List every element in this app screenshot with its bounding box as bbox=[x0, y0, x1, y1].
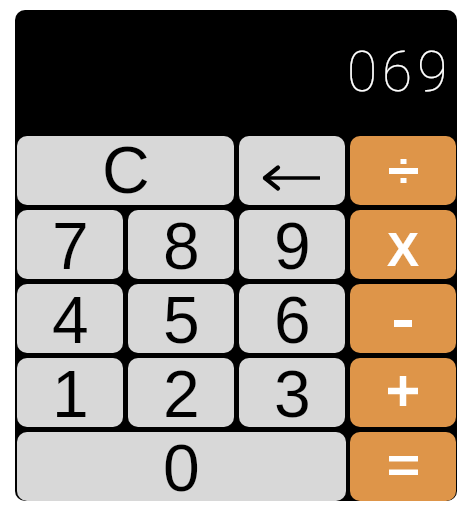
button[interactable]: C bbox=[17, 136, 234, 205]
button[interactable]: 1 bbox=[17, 358, 123, 427]
button[interactable]: 7 bbox=[17, 210, 123, 279]
staticText: 7 bbox=[52, 210, 89, 278]
staticText: 069 bbox=[347, 40, 453, 104]
staticText: 5 bbox=[163, 284, 200, 352]
staticText: 8 bbox=[163, 210, 200, 278]
button[interactable] bbox=[239, 136, 345, 205]
staticText: 3 bbox=[274, 358, 311, 426]
button[interactable] bbox=[350, 432, 456, 501]
button[interactable] bbox=[350, 136, 456, 205]
staticText: 4 bbox=[52, 284, 89, 352]
button[interactable] bbox=[350, 358, 456, 427]
button[interactable]: 9 bbox=[239, 210, 345, 279]
button[interactable]: 2 bbox=[128, 358, 234, 427]
staticText: 0 bbox=[163, 432, 200, 500]
staticText: 2 bbox=[163, 358, 200, 426]
staticText: C bbox=[102, 136, 150, 202]
staticText: 9 bbox=[274, 210, 311, 278]
button[interactable]: X bbox=[350, 210, 456, 279]
button[interactable]: 4 bbox=[17, 284, 123, 353]
button[interactable]: 5 bbox=[128, 284, 234, 353]
staticText: X bbox=[387, 223, 420, 277]
button[interactable] bbox=[350, 284, 456, 353]
button[interactable]: 6 bbox=[239, 284, 345, 353]
staticText: 1 bbox=[52, 358, 89, 426]
button[interactable]: 3 bbox=[239, 358, 345, 427]
button[interactable]: 0 bbox=[17, 432, 346, 501]
staticText: 6 bbox=[274, 284, 311, 352]
button[interactable]: 8 bbox=[128, 210, 234, 279]
